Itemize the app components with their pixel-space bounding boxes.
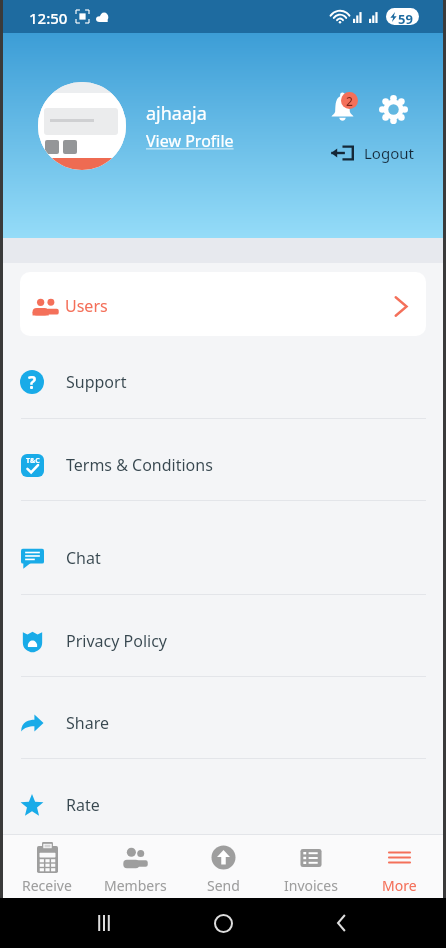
button[interactable]: Chat bbox=[0, 501, 446, 594]
staticText: Chat bbox=[66, 547, 101, 569]
button[interactable]: Share bbox=[0, 677, 446, 758]
button[interactable]: More bbox=[355, 835, 443, 898]
staticText: Users bbox=[65, 295, 108, 317]
button[interactable]: Notifications bbox=[329, 85, 361, 121]
staticText: T&C bbox=[26, 456, 40, 466]
button[interactable]: T&C bbox=[0, 419, 446, 500]
button[interactable]: Settings bbox=[377, 93, 409, 125]
button[interactable]: Receive bbox=[3, 835, 91, 898]
button[interactable]: Send bbox=[179, 835, 267, 898]
staticText: Logout bbox=[364, 143, 414, 163]
staticText: 59 bbox=[398, 10, 413, 25]
button[interactable]: Users bbox=[20, 272, 426, 336]
button[interactable]: View Profile bbox=[146, 130, 234, 152]
staticText: 2 bbox=[346, 93, 353, 109]
button[interactable]: Logout bbox=[330, 143, 414, 163]
staticText: Members bbox=[104, 876, 167, 895]
staticText: Rate bbox=[66, 794, 100, 816]
button[interactable]: Profile photo bbox=[38, 82, 126, 170]
staticText: Receive bbox=[22, 876, 72, 895]
button[interactable]: ? bbox=[0, 336, 446, 418]
button[interactable]: Members bbox=[91, 835, 179, 898]
staticText: Support bbox=[66, 371, 127, 393]
button[interactable]: Rate bbox=[0, 759, 446, 840]
button[interactable]: Home bbox=[208, 908, 238, 938]
staticText: Send bbox=[207, 876, 240, 895]
staticText: Invoices bbox=[284, 876, 338, 895]
staticText: More bbox=[382, 876, 417, 895]
staticText: Terms & Conditions bbox=[66, 454, 213, 476]
button[interactable]: Back bbox=[327, 908, 357, 938]
staticText: 12:50 bbox=[29, 8, 68, 28]
button[interactable]: Recents bbox=[89, 908, 119, 938]
button[interactable]: Privacy Policy bbox=[0, 595, 446, 676]
staticText: Share bbox=[66, 712, 109, 734]
staticText: ? bbox=[28, 371, 37, 394]
button[interactable]: Invoices bbox=[267, 835, 355, 898]
staticText: Privacy Policy bbox=[66, 630, 167, 652]
staticText: ajhaaja bbox=[146, 101, 207, 126]
